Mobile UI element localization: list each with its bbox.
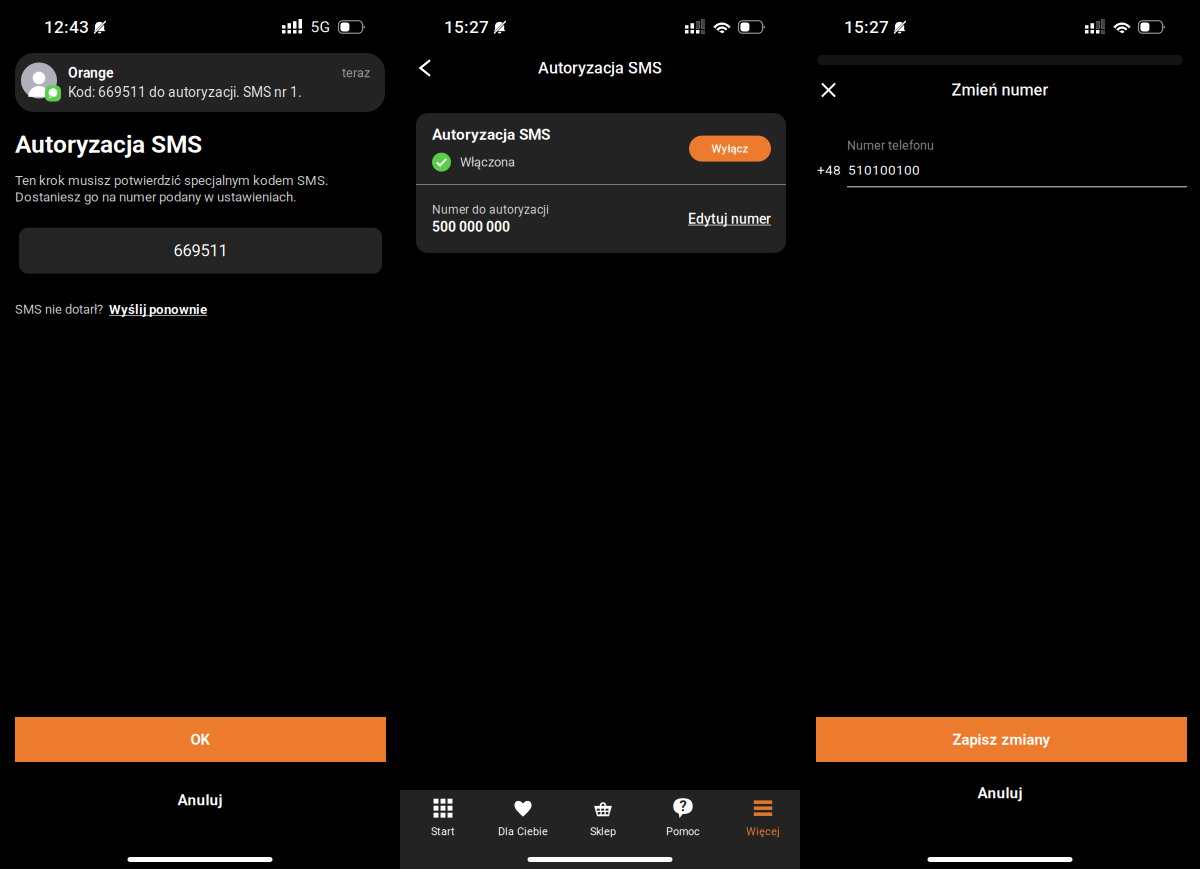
button[interactable]: ? bbox=[643, 790, 723, 844]
staticText: Numer telefonu bbox=[847, 138, 934, 153]
staticText: Zapisz zmiany bbox=[952, 731, 1050, 748]
button[interactable]: Więcej bbox=[723, 790, 803, 844]
staticText: Dostaniesz go na numer podany w ustawien… bbox=[15, 189, 296, 205]
staticText: Sklep bbox=[590, 825, 616, 838]
staticText: Autoryzacja SMS bbox=[15, 130, 202, 159]
staticText: 510100100 bbox=[848, 162, 920, 178]
staticText: Wyłącz bbox=[711, 142, 748, 155]
staticText: Orange bbox=[68, 65, 114, 81]
button[interactable]: Close bbox=[800, 65, 843, 115]
button[interactable]: Dla Ciebie bbox=[483, 790, 563, 844]
staticText: Start bbox=[431, 825, 455, 838]
button[interactable]: Anuluj bbox=[0, 787, 400, 813]
staticText: Anuluj bbox=[177, 791, 222, 809]
staticText: Zmień numer bbox=[951, 80, 1048, 99]
staticText: teraz bbox=[342, 66, 370, 80]
staticText: Autoryzacja SMS bbox=[432, 126, 550, 144]
button[interactable]: Back bbox=[400, 44, 443, 92]
button[interactable]: Zapisz zmiany bbox=[816, 717, 1187, 762]
staticText: ? bbox=[679, 798, 686, 815]
staticText: OK bbox=[190, 731, 210, 748]
staticText: Pomoc bbox=[666, 825, 700, 838]
button[interactable]: Anuluj bbox=[800, 780, 1200, 806]
staticText: Anuluj bbox=[977, 784, 1022, 802]
button[interactable]: Start bbox=[403, 790, 483, 844]
staticText: 500 000 000 bbox=[432, 219, 510, 235]
staticText: Kod: 669511 do autoryzacji. SMS nr 1. bbox=[68, 84, 302, 100]
button[interactable]: Wyślij ponownie bbox=[109, 302, 207, 317]
staticText: 15:27 bbox=[844, 17, 889, 37]
button[interactable]: 669511 bbox=[19, 228, 382, 274]
button[interactable]: Edytuj numer bbox=[688, 211, 771, 227]
staticText: Edytuj numer bbox=[688, 211, 771, 227]
button[interactable]: OK bbox=[15, 717, 386, 762]
staticText: Ten krok musisz potwierdzić specjalnym k… bbox=[15, 173, 328, 188]
staticText: 15:27 bbox=[444, 17, 489, 37]
staticText: 5G bbox=[310, 18, 330, 36]
staticText: Numer do autoryzacji bbox=[432, 203, 549, 217]
staticText: SMS nie dotarł? bbox=[15, 302, 103, 317]
staticText: Włączona bbox=[460, 155, 515, 170]
staticText: 669511 bbox=[173, 241, 227, 260]
staticText: Wyślij ponownie bbox=[109, 302, 207, 317]
button[interactable]: Sklep bbox=[563, 790, 643, 844]
staticText: Dla Ciebie bbox=[498, 825, 548, 838]
staticText: +48 bbox=[817, 162, 841, 178]
staticText: 12:43 bbox=[44, 17, 89, 37]
staticText: Więcej bbox=[746, 825, 780, 838]
staticText: Autoryzacja SMS bbox=[538, 58, 662, 77]
button[interactable]: Wyłącz bbox=[689, 136, 771, 162]
